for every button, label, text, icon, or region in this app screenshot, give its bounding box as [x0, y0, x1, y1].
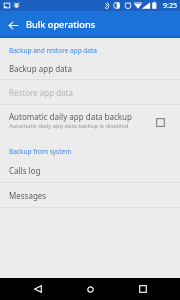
button[interactable]: Recent apps [131, 278, 154, 300]
button[interactable]: Restore app data [0, 80, 180, 104]
staticText: Backup and restore app data [9, 46, 98, 55]
button[interactable]: Navigate up [3, 15, 23, 35]
button[interactable]: Back [26, 278, 49, 300]
button[interactable]: Backup app data [0, 57, 180, 79]
button[interactable]: Messages [0, 183, 180, 207]
staticText: 9:25 [163, 1, 177, 11]
staticText: Messages [9, 190, 47, 201]
staticText: Bulk operations [26, 18, 96, 31]
staticText: Backup from system [9, 147, 72, 156]
staticText: Calls log [9, 165, 41, 176]
staticText: Automatic daily app data backup is disab… [9, 122, 129, 130]
button[interactable]: Home [79, 278, 102, 300]
button[interactable]: Automatic daily app data backup [153, 115, 167, 129]
staticText: Automatic daily app data backup [9, 111, 132, 122]
button[interactable]: Automatic daily app data backup [0, 105, 180, 135]
staticText: Backup app data [9, 63, 72, 74]
button[interactable]: Calls log [0, 158, 180, 182]
staticText: Restore app data [9, 87, 73, 98]
